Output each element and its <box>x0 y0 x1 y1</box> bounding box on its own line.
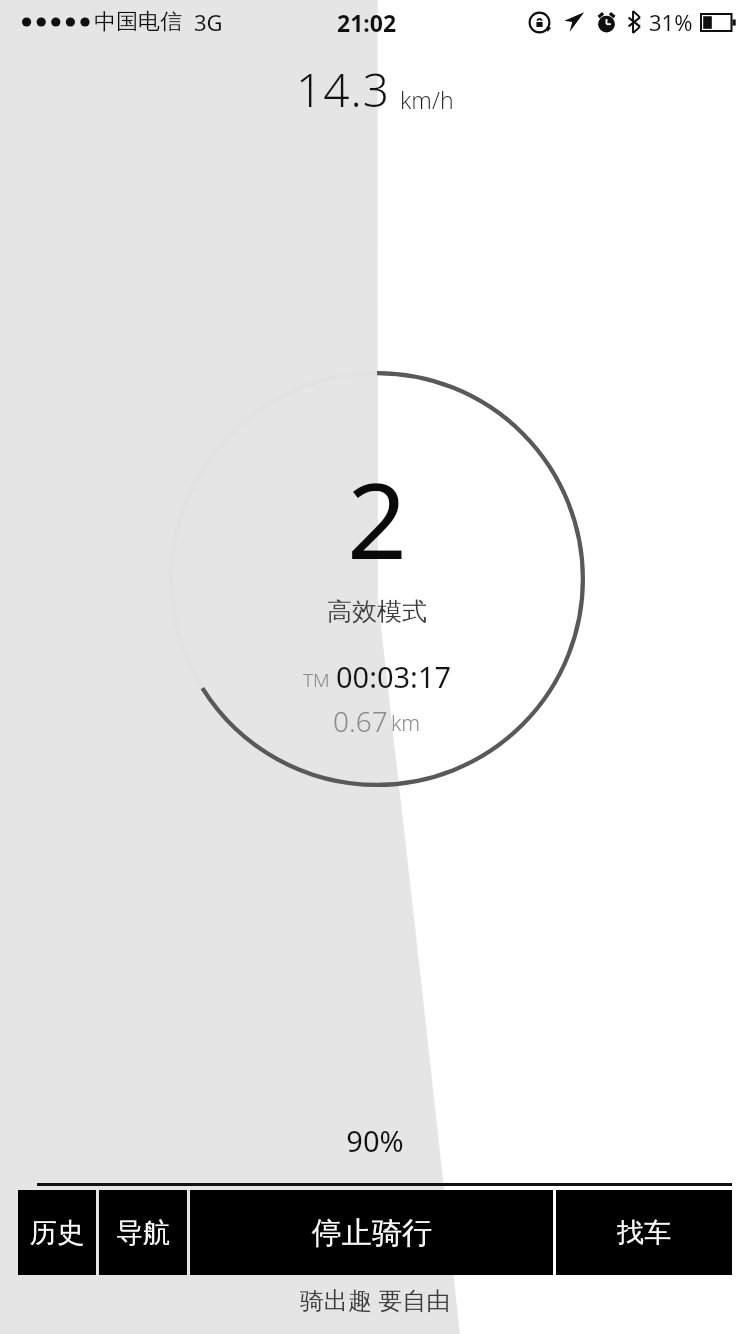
staticText: 31% <box>649 7 693 37</box>
staticText: 14.3 <box>296 58 391 121</box>
staticText: 3G <box>194 7 223 37</box>
staticText: km <box>391 709 421 738</box>
staticText: 00:03:17 <box>336 657 452 696</box>
staticText: km/h <box>400 84 454 115</box>
staticText: 90% <box>346 1121 404 1160</box>
staticText: 导航 <box>116 1216 170 1250</box>
staticText: 找车 <box>617 1216 671 1250</box>
button[interactable]: 停止骑行 <box>190 1190 553 1275</box>
staticText: 骑出趣 要自由 <box>300 1283 451 1316</box>
staticText: 高效模式 <box>327 596 427 627</box>
staticText: TM <box>303 667 330 693</box>
staticText: 2 <box>347 447 408 590</box>
staticText: 历史 <box>30 1216 84 1250</box>
button[interactable]: 找车 <box>556 1190 732 1275</box>
staticText: 0.67 <box>333 702 388 740</box>
button[interactable]: 导航 <box>99 1190 187 1275</box>
button[interactable]: 历史 <box>18 1190 96 1275</box>
button[interactable]: 2 <box>169 371 585 787</box>
staticText: 21:02 <box>337 7 397 38</box>
staticText: 停止骑行 <box>312 1214 432 1252</box>
staticText: 中国电信 <box>94 8 182 36</box>
